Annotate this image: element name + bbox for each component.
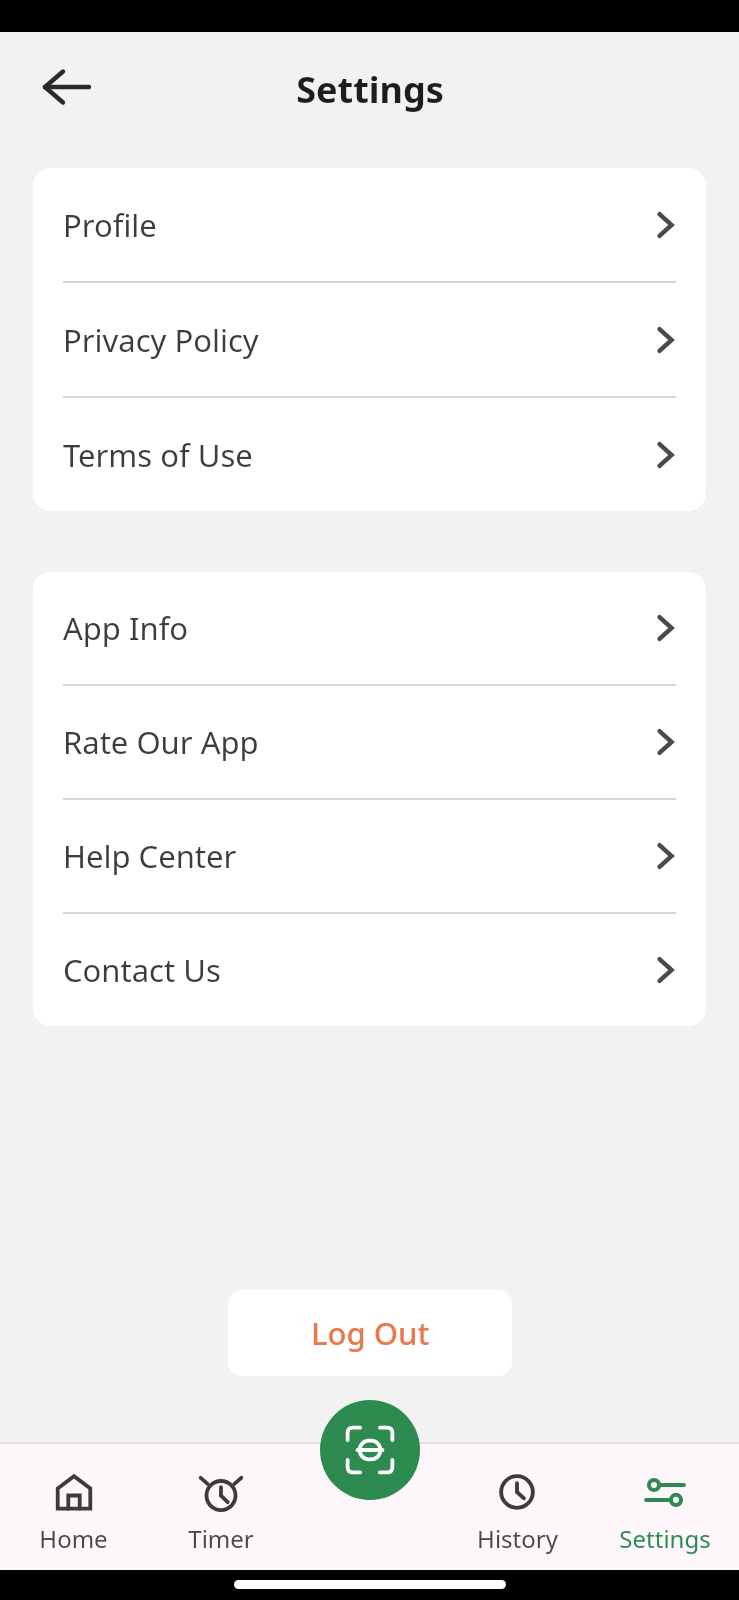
button[interactable]: Back (28, 49, 104, 125)
button[interactable]: Rate Our App (33, 686, 706, 798)
staticText: Settings (296, 65, 444, 114)
button[interactable]: Settings (591, 1442, 739, 1570)
button[interactable]: Scan (320, 1400, 420, 1500)
staticText: Home (39, 1522, 108, 1555)
staticText: Profile (63, 204, 157, 246)
staticText: Contact Us (63, 949, 221, 991)
button[interactable]: Help Center (33, 800, 706, 912)
staticText: Terms of Use (63, 434, 253, 476)
button[interactable]: Timer (147, 1442, 295, 1570)
button[interactable]: Privacy Policy (33, 283, 706, 396)
button[interactable]: App Info (33, 572, 706, 684)
button[interactable]: Contact Us (33, 914, 706, 1026)
button[interactable]: Log Out (228, 1290, 512, 1376)
staticText: Settings (619, 1522, 711, 1555)
button[interactable]: Terms of Use (33, 398, 706, 511)
staticText: Privacy Policy (63, 319, 259, 361)
staticText: History (477, 1522, 558, 1555)
button[interactable]: Home (0, 1442, 147, 1570)
button[interactable]: History (443, 1442, 591, 1570)
button[interactable]: Profile (33, 168, 706, 281)
staticText: Log Out (311, 1312, 430, 1354)
staticText: Help Center (63, 835, 237, 877)
staticText: Rate Our App (63, 721, 259, 763)
staticText: Timer (188, 1522, 254, 1555)
staticText: App Info (63, 607, 189, 649)
